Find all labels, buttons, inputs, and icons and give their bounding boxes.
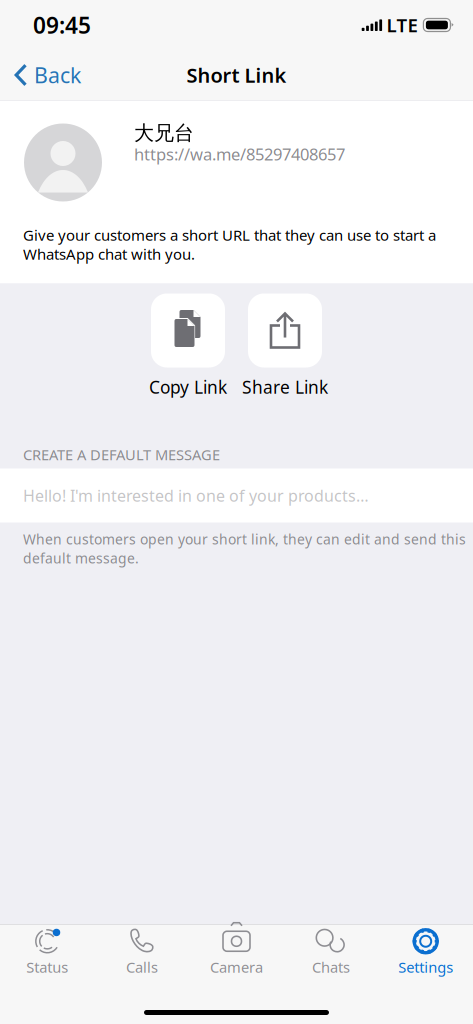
staticText: Short Link (186, 62, 286, 88)
staticText: Share Link (242, 375, 328, 398)
staticText: 09:45 (33, 10, 91, 40)
staticText: CREATE A DEFAULT MESSAGE (23, 444, 220, 464)
staticText: Copy Link (149, 375, 227, 398)
staticText: Settings (398, 957, 453, 977)
button[interactable]: Chats (284, 928, 378, 977)
button[interactable]: Copy Link (151, 293, 225, 367)
staticText: LTE (386, 13, 417, 37)
staticText: Calls (126, 957, 158, 977)
staticText: default message. (23, 549, 139, 567)
button[interactable]: Status (0, 928, 95, 977)
staticText: Hello! I'm interested in one of your pro… (23, 485, 369, 506)
button[interactable]: Back (0, 53, 91, 97)
staticText: 大兄台 (134, 121, 194, 145)
button[interactable]: Settings (378, 928, 473, 977)
staticText: Chats (312, 957, 350, 977)
staticText: Status (26, 957, 68, 977)
button[interactable]: Share Link (248, 293, 322, 367)
staticText: WhatsApp chat with you. (23, 244, 195, 264)
button[interactable]: Camera (189, 928, 284, 977)
staticText: Camera (210, 957, 263, 977)
staticText: When customers open your short link, the… (23, 530, 466, 548)
staticText: Give your customers a short URL that the… (23, 225, 436, 245)
button[interactable]: Calls (95, 928, 189, 977)
button[interactable]: Hello! I'm interested in one of your pro… (0, 468, 473, 522)
staticText: Back (34, 61, 81, 89)
staticText: https://wa.me/85297408657 (134, 143, 345, 165)
